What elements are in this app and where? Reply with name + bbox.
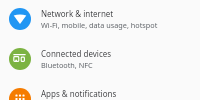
staticText: Wi-Fi, mobile, data usage, hotspot (41, 20, 158, 30)
staticText: Connected devices (41, 48, 112, 59)
staticText: Apps & notifications (41, 88, 117, 99)
button[interactable]: Network & internet (0, 0, 200, 39)
staticText: Bluetooth, NFC (41, 60, 93, 70)
button[interactable]: Connected devices (0, 39, 200, 79)
button[interactable]: Apps & notifications (0, 79, 200, 100)
staticText: Network & internet (41, 8, 114, 19)
